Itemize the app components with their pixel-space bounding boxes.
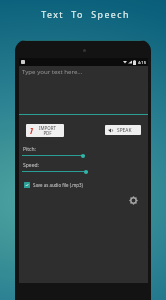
- staticText: Type your text here...: [22, 67, 83, 75]
- staticText: Text To Speech: [41, 9, 130, 21]
- staticText: IMPORT PDF: [33, 125, 62, 136]
- button[interactable]: [22, 153, 85, 158]
- button[interactable]: [22, 169, 88, 174]
- staticText: SPEAK: [117, 127, 132, 134]
- button[interactable]: Settings: [127, 194, 139, 206]
- button[interactable]: IMPORT PDF: [26, 124, 64, 137]
- staticText: 4:15: [138, 60, 146, 65]
- button[interactable]: Save as audio file (.mp3): [24, 182, 83, 188]
- staticText: Save as audio file (.mp3): [33, 182, 83, 188]
- staticText: Pitch:: [23, 146, 36, 153]
- staticText: Speed:: [23, 162, 39, 169]
- button[interactable]: SPEAK: [105, 125, 141, 135]
